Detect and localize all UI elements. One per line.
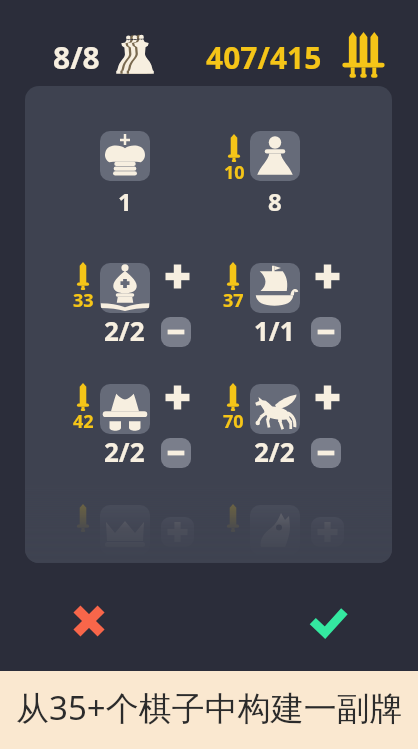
staticText: 2/2 <box>104 313 145 348</box>
staticText: 2/2 <box>254 434 295 469</box>
button[interactable]: Remove Pegasus <box>311 438 341 468</box>
button[interactable]: Spy <box>100 384 150 434</box>
staticText: 42 <box>73 409 94 434</box>
button[interactable]: Pawn <box>250 131 300 181</box>
button[interactable]: Piece <box>250 505 300 555</box>
staticText: 70 <box>223 409 244 434</box>
staticText: 8 <box>268 185 282 218</box>
button[interactable]: King <box>100 131 150 181</box>
button[interactable]: Piece <box>100 505 150 555</box>
staticText: 从35+个棋子中构建一副牌 <box>16 685 403 730</box>
button[interactable]: Remove Bishop <box>161 317 191 347</box>
staticText: 1/1 <box>254 313 295 348</box>
button[interactable]: Cancel <box>72 604 106 638</box>
button[interactable]: Remove Spy <box>161 438 191 468</box>
button[interactable]: Confirm <box>310 607 347 637</box>
button[interactable]: Add Bishop <box>161 264 194 289</box>
staticText: 33 <box>73 288 94 313</box>
button[interactable]: Add Piece <box>161 517 194 547</box>
staticText: 8/8 <box>53 37 100 78</box>
button[interactable]: Add Rook <box>311 264 344 289</box>
staticText: 407/415 <box>206 37 322 78</box>
staticText: 10 <box>224 160 245 185</box>
button[interactable]: Add Spy <box>161 385 194 410</box>
staticText: 2/2 <box>104 434 145 469</box>
button[interactable]: Remove Rook <box>311 317 341 347</box>
button[interactable]: Add Pegasus <box>311 385 344 410</box>
staticText: 37 <box>223 288 244 313</box>
staticText: 1 <box>118 185 132 218</box>
button[interactable]: Bishop <box>100 263 150 313</box>
button[interactable]: Pegasus <box>250 384 300 434</box>
button[interactable]: Add Piece <box>311 517 344 547</box>
button[interactable]: Rook <box>250 263 300 313</box>
